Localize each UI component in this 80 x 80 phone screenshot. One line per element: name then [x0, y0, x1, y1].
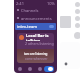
staticText: 10%	[47, 1, 55, 6]
button[interactable]: Messages	[27, 66, 33, 72]
button[interactable]: Home	[17, 66, 23, 72]
staticText: two are listening	[24, 52, 48, 56]
staticText: come whenever	[25, 57, 48, 61]
button[interactable]: Local Bar is talking	[17, 33, 54, 63]
button[interactable]: announcements	[14, 15, 57, 21]
button[interactable]: Channels	[14, 7, 57, 13]
button[interactable]: Toggle	[44, 66, 54, 72]
staticText: intro-team	[17, 24, 37, 29]
staticText: announcements	[21, 16, 52, 21]
staticText: 2:41	[16, 1, 24, 6]
staticText: 2 others listening	[25, 41, 54, 46]
button[interactable]: intro-team	[15, 23, 56, 30]
button[interactable]: Notifications	[37, 66, 43, 72]
staticText: Local Bar is talking	[26, 33, 54, 41]
staticText: Channels	[21, 8, 39, 13]
